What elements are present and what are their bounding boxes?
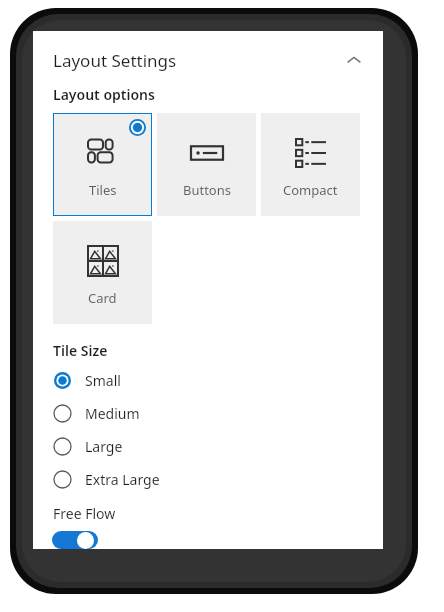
staticText: Large [85, 437, 123, 456]
staticText: Tile Size [53, 341, 108, 360]
staticText: Buttons [183, 181, 231, 199]
staticText: Tiles [89, 181, 117, 199]
staticText: Small [85, 371, 121, 390]
staticText: Extra Large [85, 470, 160, 489]
button[interactable]: Extra Large [33, 463, 383, 496]
button[interactable]: Large [33, 430, 383, 463]
button[interactable]: Compact [261, 113, 360, 216]
button[interactable]: Collapse [339, 45, 369, 75]
staticText: Layout Settings [53, 49, 177, 72]
staticText: Layout options [53, 85, 155, 104]
button[interactable]: Tiles [53, 113, 152, 216]
button[interactable]: Buttons [157, 113, 256, 216]
button[interactable]: Card [53, 221, 152, 324]
staticText: Card [88, 289, 117, 307]
button[interactable]: Layout Settings [33, 43, 383, 77]
staticText: Compact [283, 181, 338, 199]
staticText: Medium [85, 404, 140, 423]
button[interactable]: Small [33, 364, 383, 397]
button[interactable]: Medium [33, 397, 383, 430]
button[interactable]: Free Flow toggle, on [52, 531, 98, 549]
staticText: Free Flow [53, 504, 116, 523]
